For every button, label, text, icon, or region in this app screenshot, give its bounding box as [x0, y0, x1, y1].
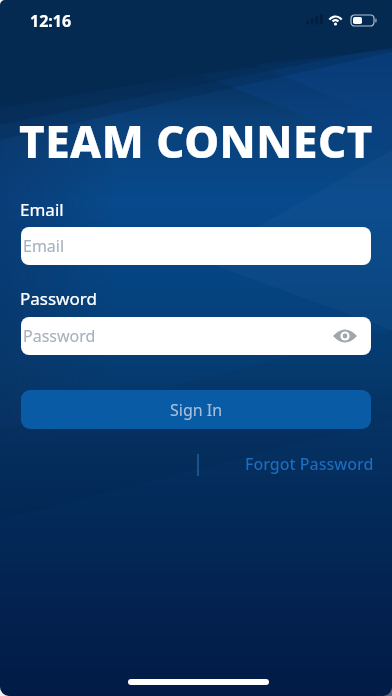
staticText: Email — [23, 235, 65, 257]
button[interactable] — [333, 328, 357, 344]
staticText: Sign In — [170, 399, 223, 421]
staticText: Email — [20, 198, 64, 221]
staticText: Password — [20, 287, 97, 310]
button[interactable]: Password — [21, 317, 371, 355]
button[interactable]: Email — [21, 227, 371, 265]
button[interactable]: Forgot Password — [239, 451, 379, 477]
staticText: 12:16 — [30, 10, 72, 32]
button[interactable]: Sign In — [21, 390, 371, 429]
staticText: Password — [23, 325, 96, 347]
staticText: Forgot Password — [245, 453, 374, 475]
staticText: TEAM CONNECT — [19, 111, 374, 171]
